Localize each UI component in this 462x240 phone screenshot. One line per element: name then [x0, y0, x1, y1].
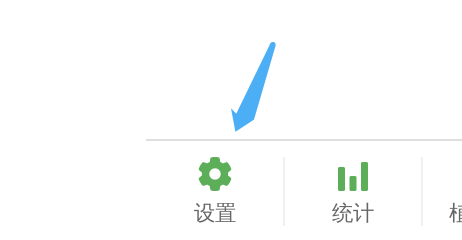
button[interactable]: 设置 [146, 140, 284, 240]
button[interactable]: 统计 [284, 140, 422, 240]
staticText: 植物百科 [449, 200, 462, 226]
button[interactable]: 植物百科 [422, 140, 462, 240]
staticText: 设置 [194, 200, 236, 226]
staticText: 统计 [332, 200, 374, 226]
